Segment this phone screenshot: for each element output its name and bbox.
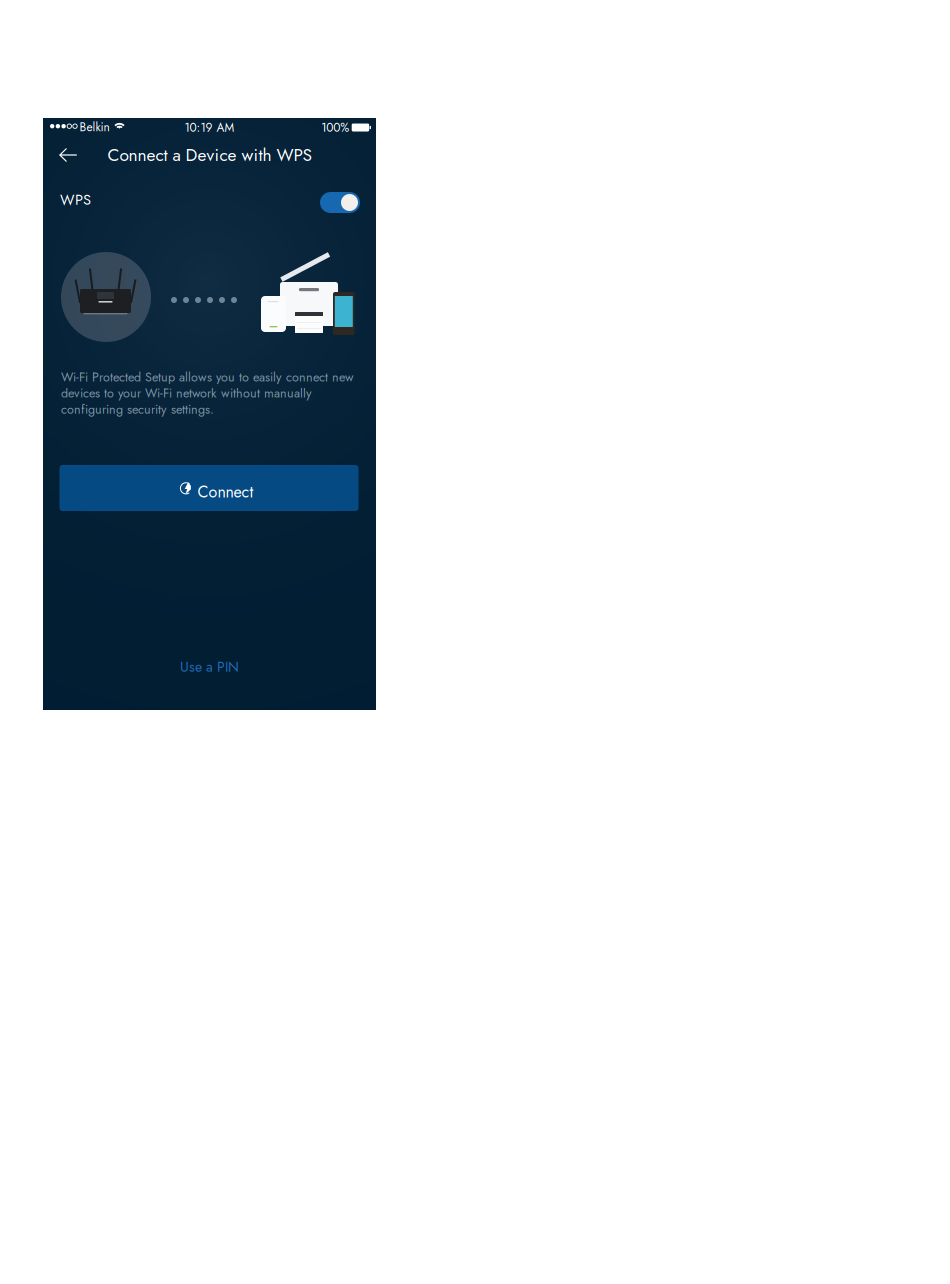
- staticText: 10:19 AM: [184, 119, 234, 136]
- button[interactable]: Use a PIN: [43, 656, 376, 678]
- staticText: Connect: [197, 480, 253, 504]
- button[interactable]: Back: [51, 139, 85, 171]
- staticText: Wi-Fi Protected Setup allows you to easi…: [61, 368, 354, 386]
- button[interactable]: WPS: [320, 192, 360, 213]
- staticText: Use a PIN: [180, 657, 239, 677]
- staticText: devices to your Wi-Fi network without ma…: [61, 384, 312, 402]
- button[interactable]: Connect: [59, 465, 358, 511]
- staticText: Belkin: [79, 118, 109, 136]
- staticText: configuring security settings.: [61, 400, 214, 418]
- staticText: Connect a Device with WPS: [107, 142, 311, 167]
- staticText: 100%: [321, 119, 349, 136]
- staticText: WPS: [60, 189, 91, 210]
